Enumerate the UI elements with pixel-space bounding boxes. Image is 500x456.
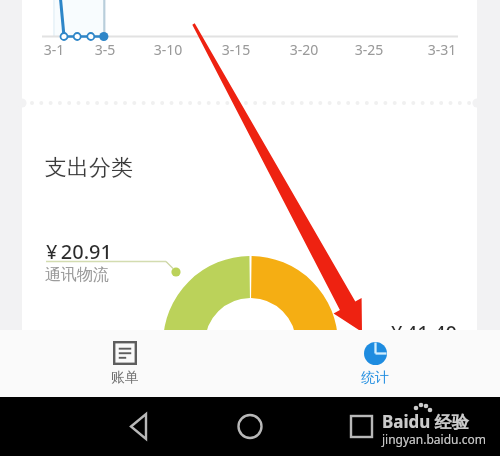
staticText: Baidu 经验	[382, 410, 469, 433]
button[interactable]: 统计	[250, 330, 500, 397]
staticText: ¥ 20.91	[46, 238, 112, 265]
staticText: 3-10	[143, 40, 193, 59]
staticText: 统计	[361, 369, 389, 387]
staticText: 3-5	[80, 40, 130, 59]
staticText: ¥ 41.40	[391, 319, 457, 346]
staticText: 通讯物流	[45, 265, 109, 285]
staticText: 3-31	[417, 40, 467, 59]
button[interactable]: 账单	[0, 330, 250, 397]
button[interactable]: Back	[113, 397, 163, 456]
staticText: 3-20	[279, 40, 329, 59]
staticText: 3-25	[344, 40, 394, 59]
staticText: jingyan.baidu.com	[382, 431, 486, 447]
button[interactable]: Recent apps	[336, 397, 386, 456]
staticText: 支出分类	[45, 154, 133, 182]
staticText: 账单	[111, 369, 139, 387]
staticText: 3-15	[211, 40, 261, 59]
staticText: 3-1	[29, 40, 79, 59]
button[interactable]: Home	[225, 397, 275, 456]
